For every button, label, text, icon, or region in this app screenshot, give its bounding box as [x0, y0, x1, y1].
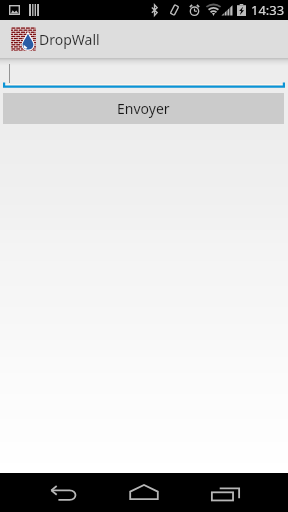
staticText: Envoyer [117, 99, 170, 118]
button[interactable]: Envoyer [3, 93, 284, 124]
button[interactable]: Home [112, 473, 176, 512]
button[interactable]: Back [16, 473, 112, 512]
staticText: 14:33 [251, 1, 285, 19]
button[interactable]: Recent apps [176, 473, 275, 512]
staticText: DropWall [39, 30, 100, 49]
button[interactable]: Message input [3, 59, 285, 88]
